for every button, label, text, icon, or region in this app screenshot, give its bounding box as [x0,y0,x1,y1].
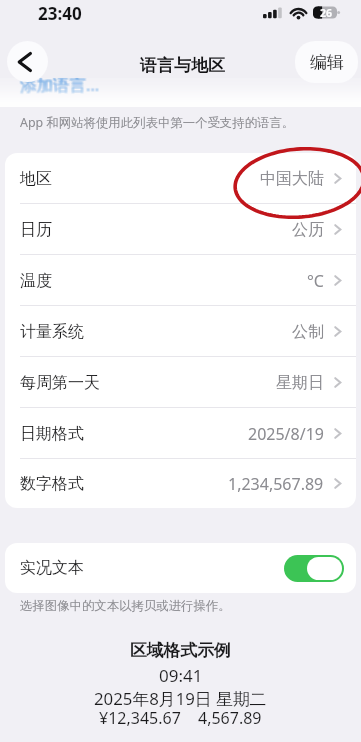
staticText: 添加语言... [21,73,101,96]
staticText: 地区 [20,169,52,189]
button[interactable]: 计量系统 [5,306,356,357]
staticText: 公制 [292,322,324,342]
button[interactable]: 日期格式 [5,408,356,459]
staticText: 09:41 [159,664,203,687]
button[interactable]: 温度 [5,255,356,306]
staticText: 中国大陆 [260,169,324,189]
staticText: 添加语言... [20,74,100,97]
staticText: 添加语言... [20,72,100,95]
staticText: 语言与地区 [140,55,225,76]
button[interactable]: 实况文本 [5,543,356,593]
staticText: 星期日 [276,373,324,393]
staticText: 添加语言... [21,74,101,97]
button[interactable]: 添加语言... [14,70,109,98]
button[interactable]: 日历 [5,204,356,255]
button[interactable]: Live Text toggle [284,555,344,582]
staticText: 日期格式 [20,424,84,444]
staticText: 区域格式示例 [130,640,231,661]
staticText: °C [307,270,324,292]
staticText: 温度 [20,271,52,291]
staticText: 1,234,567.89 [228,473,324,495]
staticText: 计量系统 [20,322,84,342]
staticText: 添加语言... [19,73,99,96]
staticText: 编辑 [310,52,344,73]
staticText: 实况文本 [20,558,84,578]
staticText: 4,567.89 [198,707,262,729]
staticText: 添加语言... [19,74,99,97]
button[interactable]: 地区 [5,153,356,204]
staticText: App 和网站将使用此列表中第一个受支持的语言。 [20,114,295,131]
staticText: 23:40 [38,2,82,25]
staticText: 每周第一天 [20,373,100,393]
staticText: ¥12,345.67 [99,707,181,729]
button[interactable]: 数字格式 [5,459,356,508]
button[interactable]: 每周第一天 [5,357,356,408]
staticText: 日历 [20,220,52,240]
staticText: 添加语言... [19,72,99,95]
staticText: 选择图像中的文本以拷贝或进行操作。 [20,598,231,614]
staticText: 数字格式 [20,474,84,494]
staticText: 公历 [292,220,324,240]
button[interactable]: Back [7,41,48,82]
staticText: 添加语言... [21,72,101,95]
staticText: 2025/8/19 [248,423,324,445]
button[interactable]: 编辑 [295,41,358,83]
staticText: 添加语言... [20,73,100,96]
staticText: 26 [320,6,333,20]
staticText: 2025年8月19日 星期二 [94,687,267,710]
